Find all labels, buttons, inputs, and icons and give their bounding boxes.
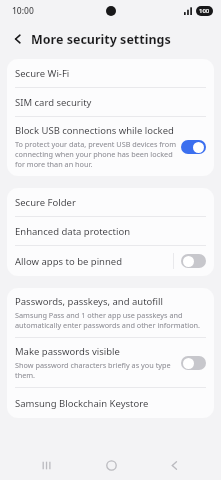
button[interactable]: Back [157, 450, 191, 480]
staticText: SIM card security [15, 96, 92, 109]
staticText: Samsung Pass and 1 other app use passkey… [15, 310, 204, 330]
button[interactable]: Secure Folder [7, 188, 214, 216]
staticText: Make passwords visible [15, 345, 120, 358]
button[interactable]: Block USB connections while locked [7, 117, 214, 176]
staticText: Enhanced data protection [15, 225, 131, 238]
button[interactable]: Enhanced data protection [7, 217, 214, 245]
button[interactable]: Back [5, 26, 31, 52]
button[interactable]: Allow apps to be pinned [7, 246, 214, 276]
staticText: Allow apps to be pinned [15, 255, 123, 268]
button[interactable]: Off [181, 356, 206, 370]
button[interactable]: Samsung Blockchain Keystore [7, 388, 214, 418]
staticText: To protect your data, prevent USB device… [15, 139, 176, 169]
button[interactable]: Passwords, passkeys, and autofill [7, 288, 214, 337]
staticText: Block USB connections while locked [15, 124, 174, 137]
staticText: Passwords, passkeys, and autofill [15, 295, 163, 308]
staticText: Show password characters briefly as you … [15, 360, 176, 380]
button[interactable]: Secure Wi-Fi [7, 59, 214, 87]
button[interactable]: Make passwords visible [7, 338, 214, 387]
staticText: 10:00 [12, 5, 34, 17]
button[interactable]: Off [181, 254, 206, 268]
staticText: Samsung Blockchain Keystore [15, 397, 149, 410]
staticText: Secure Wi-Fi [15, 67, 70, 80]
button[interactable]: On [181, 140, 206, 154]
button[interactable]: Recent apps [30, 450, 64, 480]
staticText: Secure Folder [15, 196, 76, 209]
button[interactable]: Home [94, 450, 128, 480]
button[interactable]: SIM card security [7, 88, 214, 116]
staticText: More security settings [31, 31, 171, 48]
staticText: 100 [199, 7, 210, 15]
